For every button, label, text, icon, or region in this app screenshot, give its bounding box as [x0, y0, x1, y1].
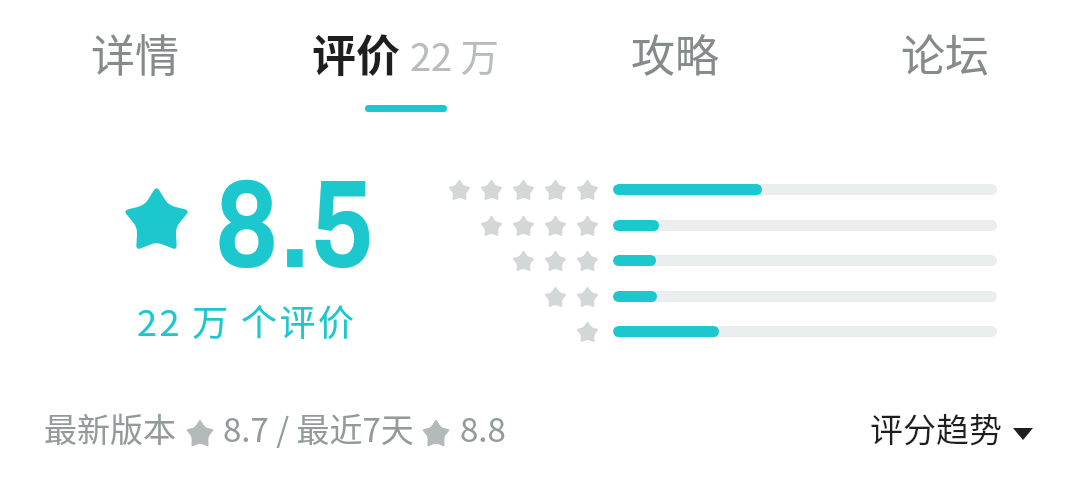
button[interactable]: 论坛 — [810, 0, 1080, 130]
staticText: 攻略 — [631, 21, 719, 85]
button[interactable]: 评分趋势 — [870, 404, 1033, 452]
button[interactable]: 3 star ratings — [439, 249, 999, 270]
staticText: 最新版本 — [44, 404, 176, 452]
other: Expand rating trend — [1013, 428, 1033, 440]
staticText: 评价 — [312, 21, 400, 85]
button[interactable]: 评价 — [270, 0, 540, 130]
button[interactable]: 2 star ratings — [439, 285, 999, 306]
button[interactable]: 5 star ratings — [439, 178, 999, 199]
button[interactable]: 最新版本 — [44, 404, 506, 452]
button[interactable]: 攻略 — [540, 0, 810, 130]
button[interactable]: 22 万 个评价 — [108, 165, 388, 345]
staticText: 详情 — [91, 21, 179, 85]
staticText: 论坛 — [901, 21, 989, 85]
staticText: 8.8 — [460, 404, 506, 452]
staticText: 8.7 / 最近7天 — [223, 404, 414, 452]
staticText: 22 万 个评价 — [137, 294, 357, 346]
button[interactable]: 1 star ratings — [439, 320, 999, 341]
button[interactable]: 4 star ratings — [439, 214, 999, 235]
staticText: 评分趋势 — [870, 404, 1002, 452]
staticText: 22 万 — [410, 27, 499, 82]
button[interactable]: 详情 — [0, 0, 270, 130]
